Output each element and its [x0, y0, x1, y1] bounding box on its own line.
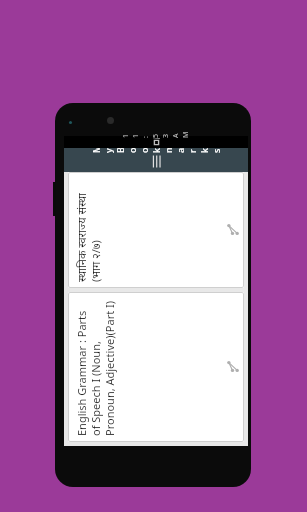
- staticText: English Grammar : Parts of Speech I (Nou…: [74, 298, 117, 436]
- button[interactable]: English Grammar : Parts of Speech I (Nou…: [68, 292, 244, 442]
- other: Share: [226, 360, 239, 373]
- button[interactable]: स्थानिक स्वराज्य संस्था (भाग २/७): [68, 172, 244, 288]
- other: Share: [226, 223, 239, 236]
- button[interactable]: Open navigation drawer: [64, 153, 248, 167]
- staticText: स्थानिक स्वराज्य संस्था (भाग २/७): [74, 178, 103, 282]
